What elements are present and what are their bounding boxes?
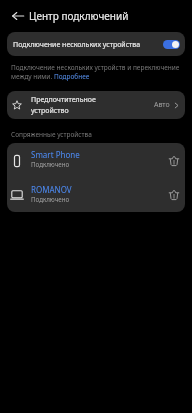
staticText: Сопряженные устройства [11,130,92,139]
button[interactable]: ROMANOV [7,178,185,212]
staticText: Предпочтительное [31,95,96,105]
button[interactable]: Delete [168,189,180,201]
staticText: Smart Phone [31,149,80,160]
button[interactable]: Smart Phone [7,143,185,178]
button[interactable]: Подробнее [54,72,90,81]
button[interactable]: Back [9,7,26,24]
staticText: ROMANOV [31,184,72,195]
button[interactable]: Подключение нескольких устройства [7,32,185,56]
staticText: Авто [154,100,170,110]
staticText: Подключено [31,160,70,168]
staticText: устройство [31,106,69,116]
staticText: Центр подключений [29,9,129,23]
button[interactable]: Предпочтительное [7,91,185,119]
staticText: Подключение нескольких устройства [13,40,141,50]
staticText: между ними. [11,72,54,81]
button[interactable]: Delete [168,155,180,167]
staticText: Подключение нескольких устройств и перек… [11,63,180,72]
staticText: Подключено [31,195,70,203]
